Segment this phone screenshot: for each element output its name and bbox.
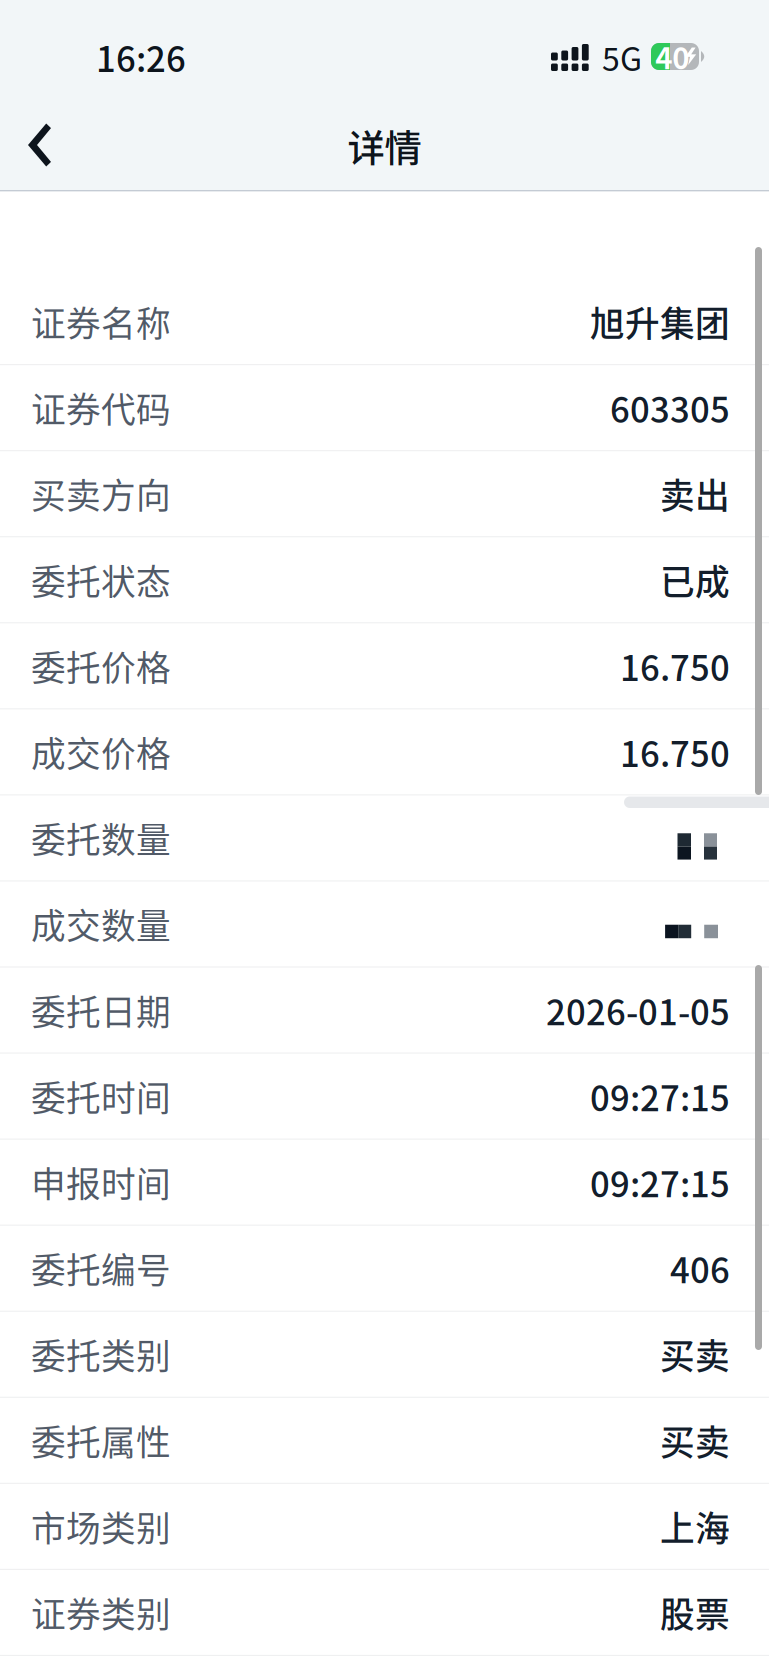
staticText: 09:27:15 bbox=[590, 1157, 730, 1207]
staticText: 成交价格 bbox=[31, 727, 171, 777]
staticText: 09:27:15 bbox=[590, 1071, 730, 1121]
staticText: 委托属性 bbox=[31, 1415, 171, 1465]
staticText: 委托编号 bbox=[31, 1243, 171, 1293]
staticText: 40 bbox=[655, 35, 689, 78]
staticText: 委托数量 bbox=[31, 813, 171, 863]
staticText: 603305 bbox=[610, 383, 730, 433]
staticText: 委托时间 bbox=[31, 1071, 171, 1121]
staticText: 406 bbox=[670, 1243, 730, 1293]
staticText: 委托状态 bbox=[31, 555, 171, 605]
staticText: 证券代码 bbox=[31, 383, 171, 433]
staticText: 买卖方向 bbox=[31, 469, 171, 519]
staticText: 申报时间 bbox=[31, 1157, 171, 1207]
staticText: 股票 bbox=[660, 1587, 730, 1637]
staticText: 证券类别 bbox=[31, 1587, 171, 1637]
staticText: 16:26 bbox=[96, 32, 186, 82]
staticText: 成交数量 bbox=[31, 899, 171, 949]
staticText: 16.750 bbox=[620, 727, 730, 777]
staticText: 16.750 bbox=[620, 641, 730, 691]
staticText: 买卖 bbox=[660, 1329, 730, 1379]
staticText: 旭升集团 bbox=[590, 296, 730, 347]
staticText: 委托日期 bbox=[31, 985, 171, 1035]
staticText: 买卖 bbox=[660, 1415, 730, 1465]
staticText: 已成 bbox=[660, 555, 730, 605]
staticText: 委托价格 bbox=[31, 641, 171, 691]
staticText: 证券名称 bbox=[31, 296, 171, 347]
staticText: 委托类别 bbox=[31, 1329, 171, 1379]
staticText: 上海 bbox=[660, 1501, 730, 1551]
staticText: 卖出 bbox=[660, 469, 730, 519]
staticText: 2026-01-05 bbox=[546, 985, 730, 1035]
staticText: 5G bbox=[602, 34, 642, 80]
button[interactable]: Back bbox=[0, 102, 79, 188]
staticText: 市场类别 bbox=[31, 1501, 171, 1551]
staticText: 详情 bbox=[347, 119, 421, 173]
